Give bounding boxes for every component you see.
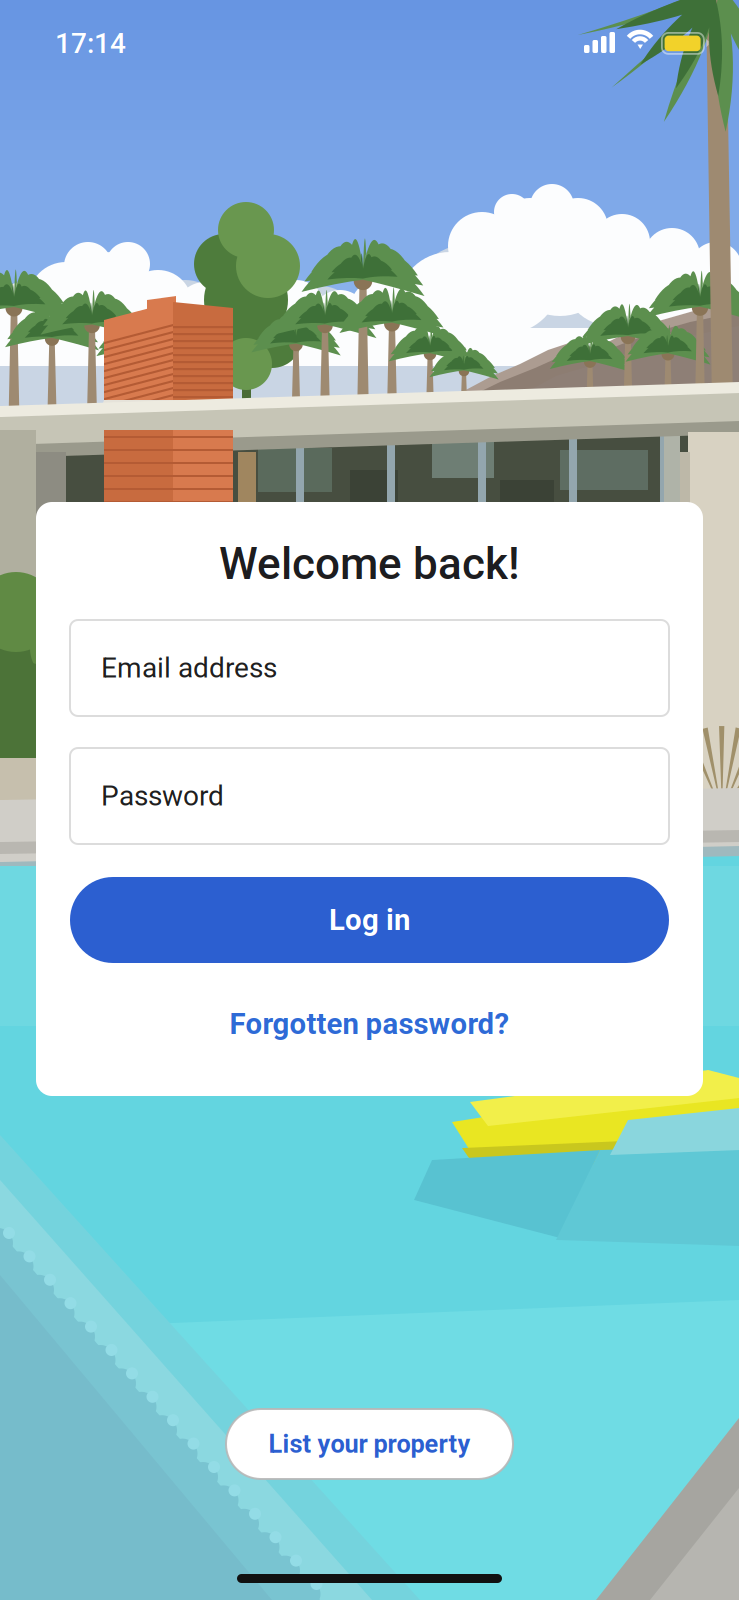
staticText: Password (101, 780, 224, 812)
staticText: Forgotten password? (229, 1007, 509, 1041)
staticText: Log in (329, 903, 410, 937)
staticText: 17:14 (55, 27, 126, 60)
button[interactable]: Password (70, 748, 669, 844)
staticText: List your property (268, 1429, 470, 1459)
staticText: Email address (101, 652, 277, 684)
button[interactable]: Email address (70, 620, 669, 716)
button[interactable]: Log in (70, 877, 669, 963)
button[interactable]: List your property (226, 1409, 513, 1479)
button[interactable]: Forgotten password? (70, 997, 669, 1051)
staticText: Welcome back! (219, 538, 520, 590)
